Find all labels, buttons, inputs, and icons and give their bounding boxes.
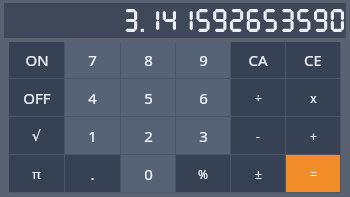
staticText: 6 (199, 88, 208, 108)
staticText: % (198, 166, 208, 182)
button[interactable]: ÷ (231, 79, 286, 117)
staticText: 4 (88, 88, 97, 108)
staticText: CA (248, 50, 268, 70)
staticText: √ (32, 128, 41, 144)
staticText: 2 (144, 126, 153, 146)
staticText: x (310, 90, 317, 106)
button[interactable]: 7 (65, 42, 121, 79)
staticText: 9 (199, 50, 208, 70)
button[interactable]: CE (286, 42, 341, 79)
staticText: 3 (199, 126, 208, 146)
staticText: 7 (88, 50, 97, 70)
staticText: . (90, 164, 95, 184)
button[interactable]: 5 (121, 79, 176, 117)
button[interactable]: 3 (176, 117, 231, 155)
staticText: π (32, 165, 41, 183)
button[interactable]: 1 (65, 117, 121, 155)
button[interactable]: % (176, 155, 231, 193)
button[interactable]: 6 (176, 79, 231, 117)
button[interactable]: + (286, 117, 341, 155)
staticText: CE (304, 50, 322, 70)
staticText: + (310, 128, 317, 144)
button[interactable]: x (286, 79, 341, 117)
staticText: = (310, 166, 317, 182)
staticText: 0 (144, 164, 153, 184)
staticText: 8 (144, 50, 153, 70)
button[interactable]: 0 (121, 155, 176, 193)
staticText: OFF (23, 88, 51, 108)
button[interactable]: ± (231, 155, 286, 193)
staticText: 5 (144, 88, 153, 108)
button[interactable]: 8 (121, 42, 176, 79)
button[interactable]: - (231, 117, 286, 155)
button[interactable]: OFF (9, 79, 65, 117)
button[interactable]: 2 (121, 117, 176, 155)
button[interactable]: ON (9, 42, 65, 79)
button[interactable]: √ (9, 117, 65, 155)
button[interactable]: CA (231, 42, 286, 79)
button[interactable]: = (286, 155, 341, 193)
staticText: ± (255, 166, 262, 182)
button[interactable]: 4 (65, 79, 121, 117)
staticText: ÷ (255, 90, 262, 106)
staticText: ON (25, 50, 49, 70)
button[interactable]: 9 (176, 42, 231, 79)
staticText: 1 (88, 126, 97, 146)
button[interactable]: π (9, 155, 65, 193)
button[interactable]: . (65, 155, 121, 193)
staticText: - (256, 128, 260, 144)
